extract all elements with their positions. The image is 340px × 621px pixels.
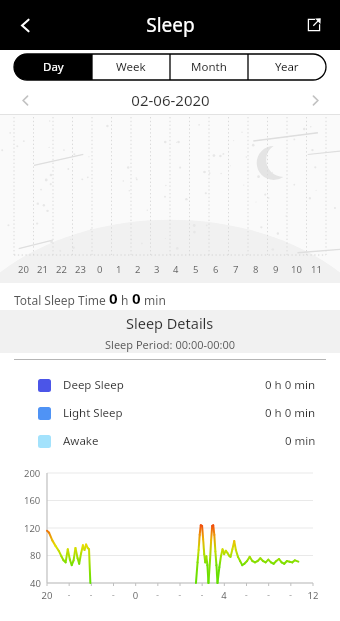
staticText: Week: [116, 59, 146, 75]
staticText: 0: [132, 288, 141, 308]
staticText: Day: [43, 59, 64, 75]
staticText: Deep Sleep: [63, 377, 124, 393]
staticText: Month: [191, 59, 227, 75]
staticText: 0: [109, 288, 118, 308]
staticText: Total Sleep Time: [14, 292, 109, 308]
staticText: Sleep Details: [126, 313, 214, 333]
button[interactable]: Next day: [300, 85, 330, 115]
staticText: Year: [275, 59, 299, 75]
staticText: 4: [173, 263, 179, 276]
staticText: 21: [37, 263, 48, 276]
staticText: 10: [291, 263, 302, 276]
staticText: Awake: [63, 433, 99, 449]
button[interactable]: Light Sleep: [0, 399, 340, 427]
staticText: 8: [253, 263, 259, 276]
staticText: 9: [273, 263, 279, 276]
staticText: 3: [154, 263, 160, 276]
button[interactable]: Week: [92, 54, 170, 80]
button[interactable]: Awake: [0, 427, 340, 455]
staticText: Sleep Period: 00:00-00:00: [105, 337, 236, 352]
button[interactable]: Month: [170, 54, 248, 80]
staticText: min: [141, 292, 166, 308]
staticText: 1: [116, 263, 122, 276]
button[interactable]: Back: [6, 6, 44, 44]
staticText: Sleep: [146, 12, 195, 38]
staticText: 11: [311, 263, 322, 276]
staticText: 0: [97, 263, 103, 276]
staticText: 5: [193, 263, 199, 276]
button[interactable]: Day: [14, 54, 92, 80]
staticText: 0 h 0 min: [265, 377, 316, 393]
staticText: 02-06-2020: [131, 90, 210, 110]
staticText: h: [118, 292, 132, 308]
staticText: 0 min: [285, 433, 316, 449]
staticText: Light Sleep: [63, 405, 123, 421]
button[interactable]: Previous day: [10, 85, 40, 115]
staticText: 7: [233, 263, 239, 276]
staticText: 20: [18, 263, 29, 276]
staticText: 6: [213, 263, 219, 276]
staticText: 22: [56, 263, 67, 276]
staticText: 23: [75, 263, 86, 276]
button[interactable]: Year: [248, 54, 326, 80]
button[interactable]: Share: [295, 6, 333, 44]
staticText: 0 h 0 min: [265, 405, 316, 421]
button[interactable]: Deep Sleep: [0, 371, 340, 399]
staticText: 2: [135, 263, 141, 276]
